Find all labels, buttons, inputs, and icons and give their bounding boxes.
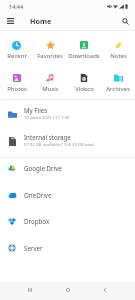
staticText: Photos [7,85,27,93]
staticText: Music [42,85,59,93]
staticText: Dropbox [24,217,50,225]
staticText: Favorites [37,52,63,60]
staticText: Server [24,244,43,252]
staticText: OneDrive [24,191,52,199]
button[interactable]: Recent apps [21,282,39,300]
button[interactable]: Google Drive [0,158,135,178]
button[interactable]: Music [33,72,67,93]
staticText: 14:44 [9,3,24,10]
button[interactable]: Videos [67,72,101,93]
staticText: Archives [106,85,130,93]
button[interactable]: Server [0,238,135,258]
button[interactable]: Dropbox [0,211,135,231]
staticText: Recent [7,52,27,60]
button[interactable]: Notes [101,39,135,60]
button[interactable]: Downloads [67,39,101,60]
button[interactable]: Search [117,13,133,29]
button[interactable]: OneDrive [0,185,135,205]
button[interactable]: Home [59,282,77,300]
button[interactable]: Back [96,282,114,300]
staticText: Internal storage [24,133,71,141]
button[interactable]: Archives [101,72,135,93]
staticText: Notes [110,52,127,60]
button[interactable]: Open navigation menu [2,13,18,29]
button[interactable]: My Files [0,100,135,127]
staticText: Google Drive [24,164,62,172]
staticText: Home [30,16,52,26]
button[interactable]: Internal storage [0,127,135,154]
staticText: Videos [75,85,94,93]
staticText: Downloads [68,52,100,60]
staticText: 57.32 GB available / 106.35 GB total [24,142,94,148]
button[interactable]: Favorites [33,39,67,60]
staticText: My Files [24,106,48,114]
button[interactable]: Recent [0,39,33,60]
staticText: 10 июня 2023 11:11:30 [24,115,70,121]
button[interactable]: Photos [0,72,33,93]
